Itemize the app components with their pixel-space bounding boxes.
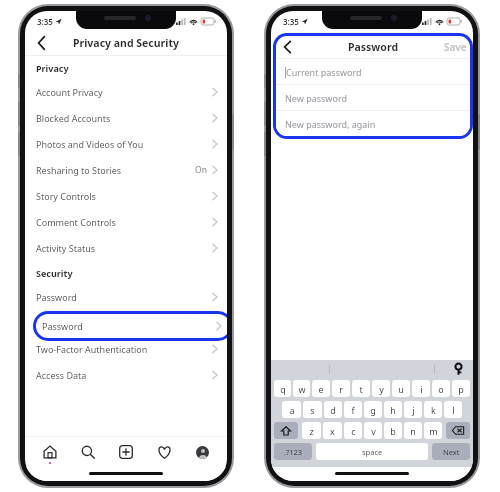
button[interactable]: b	[384, 422, 402, 439]
staticText: f	[351, 404, 355, 416]
staticText: v	[371, 425, 376, 437]
button[interactable]: n	[404, 422, 422, 439]
button[interactable]: Comment Controls	[25, 209, 227, 235]
staticText: Security	[36, 267, 73, 279]
staticText: Password	[347, 36, 398, 50]
staticText: b	[390, 425, 396, 437]
button[interactable]: New password	[271, 82, 473, 107]
button[interactable]: y	[372, 380, 390, 397]
staticText: z	[309, 425, 314, 437]
staticText: Resharing to Stories	[36, 164, 122, 176]
button[interactable]: Next	[432, 443, 470, 460]
button[interactable]: o	[432, 380, 450, 397]
button[interactable]: t	[352, 380, 370, 397]
button[interactable]: New password, again	[271, 108, 473, 133]
staticText: New password, again	[280, 115, 371, 127]
staticText: y	[379, 383, 384, 395]
button[interactable]: New password	[276, 85, 470, 110]
button[interactable]: d	[324, 401, 342, 418]
button[interactable]: f	[344, 401, 362, 418]
staticText: Access Data	[36, 369, 87, 381]
button[interactable]: j	[404, 401, 422, 418]
button[interactable]: Home	[37, 439, 63, 465]
staticText: t	[359, 383, 363, 395]
staticText: i	[420, 383, 423, 395]
staticText: n	[410, 425, 416, 437]
button[interactable]: Current password	[276, 59, 470, 84]
button[interactable]: p	[452, 380, 470, 397]
button[interactable]: Resharing to Stories	[25, 157, 227, 183]
staticText: Saved Login Info	[36, 317, 107, 329]
button[interactable]: h	[384, 401, 402, 418]
button[interactable]: Back	[279, 36, 296, 58]
button[interactable]: Story Controls	[25, 183, 227, 209]
staticText: u	[398, 383, 404, 395]
button[interactable]: q	[274, 380, 291, 397]
other: Back	[283, 35, 292, 51]
staticText: c	[351, 425, 356, 437]
button[interactable]: c	[344, 422, 362, 439]
staticText: .?123	[284, 447, 303, 457]
button[interactable]: a	[282, 401, 301, 418]
button[interactable]: v	[364, 422, 382, 439]
staticText: Blocked Accounts	[36, 112, 111, 124]
button[interactable]: l	[444, 401, 462, 418]
button[interactable]: s	[303, 401, 322, 418]
button[interactable]: New post	[113, 439, 139, 465]
staticText: Two-Factor Authentication	[36, 343, 148, 355]
button[interactable]: Profile	[189, 439, 215, 465]
button[interactable]: Blocked Accounts	[25, 105, 227, 131]
button[interactable]: m	[424, 422, 442, 439]
staticText: New password, again	[285, 118, 376, 130]
button[interactable]: Account Privacy	[25, 79, 227, 105]
button[interactable]: Save	[444, 40, 467, 54]
button[interactable]: Back	[279, 31, 296, 55]
button[interactable]: Back	[33, 31, 50, 55]
staticText: Password	[36, 291, 77, 303]
button[interactable]: w	[293, 380, 310, 397]
staticText: r	[339, 383, 343, 395]
button[interactable]: r	[332, 380, 350, 397]
staticText: s	[310, 404, 315, 416]
staticText: space	[362, 447, 383, 457]
staticText: New password	[280, 89, 342, 101]
staticText: On	[195, 164, 207, 176]
button[interactable]: Current password	[271, 56, 473, 81]
button[interactable]: k	[424, 401, 442, 418]
staticText: Photos and Videos of You	[36, 138, 144, 150]
button[interactable]: Passwords	[454, 363, 463, 375]
staticText: Password	[348, 40, 399, 54]
button[interactable]: z	[302, 422, 321, 439]
button[interactable]: u	[392, 380, 410, 397]
button[interactable]: g	[364, 401, 382, 418]
staticText: Account Privacy	[36, 86, 103, 98]
button[interactable]: space	[316, 443, 428, 460]
button[interactable]: Two-Factor Authentication	[25, 336, 227, 362]
staticText: k	[431, 404, 436, 416]
button[interactable]: i	[412, 380, 430, 397]
button[interactable]: Backspace	[446, 422, 470, 439]
button[interactable]: Access Data	[25, 362, 227, 388]
staticText: o	[438, 383, 444, 395]
staticText: Privacy and Security	[73, 36, 179, 50]
staticText: a	[289, 404, 295, 416]
button[interactable]: e	[312, 380, 330, 397]
staticText: p	[458, 383, 464, 395]
button[interactable]: Activity Status	[25, 235, 227, 261]
button[interactable]: Saved Login Info	[25, 310, 227, 336]
button[interactable]: Photos and Videos of You	[25, 131, 227, 157]
other: Back	[37, 35, 46, 51]
button[interactable]: x	[323, 422, 342, 439]
button[interactable]: Shift	[274, 422, 298, 439]
staticText: m	[429, 425, 438, 437]
button[interactable]: .?123	[274, 443, 312, 460]
staticText: w	[298, 383, 306, 395]
button[interactable]: New password, again	[276, 111, 470, 136]
button[interactable]: Search	[75, 439, 101, 465]
staticText: d	[330, 404, 336, 416]
button[interactable]: Activity	[151, 439, 177, 465]
button[interactable]: Save	[441, 36, 464, 50]
staticText: x	[330, 425, 335, 437]
staticText: q	[280, 383, 286, 395]
button[interactable]: Password	[25, 284, 227, 310]
